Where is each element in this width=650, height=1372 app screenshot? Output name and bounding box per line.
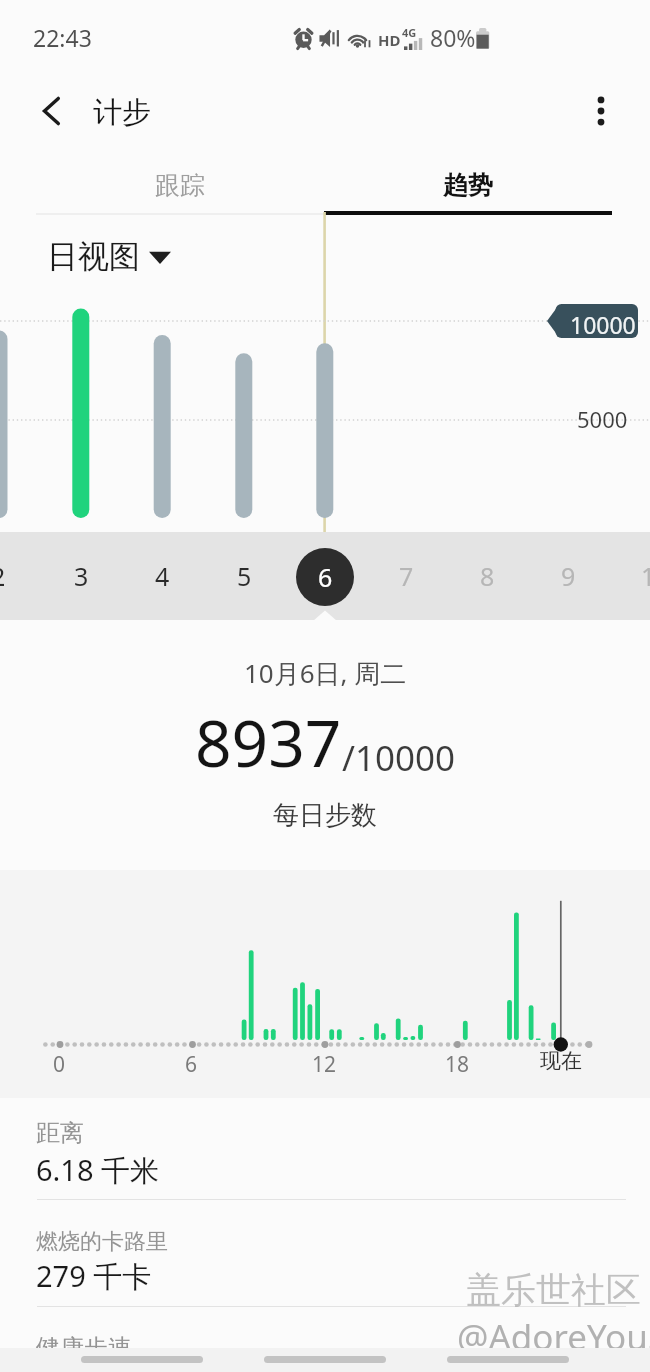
button[interactable]: 9 — [546, 532, 590, 620]
button[interactable]: 2 — [0, 532, 20, 620]
button[interactable]: Navigation button — [81, 1356, 203, 1363]
button[interactable]: 3 — [59, 532, 103, 620]
button[interactable]: 4 — [140, 532, 184, 620]
staticText: 4G — [402, 25, 417, 40]
staticText: 健康步速 — [36, 1333, 132, 1363]
button[interactable]: Navigation button — [447, 1356, 569, 1363]
button[interactable]: More options — [578, 88, 624, 134]
button[interactable]: 跟踪 — [36, 156, 324, 214]
staticText: 12 — [312, 1050, 337, 1079]
staticText: 6.18 千米 — [36, 1150, 160, 1190]
staticText: 计步 — [93, 94, 151, 131]
button[interactable]: 5 — [222, 532, 266, 620]
staticText: 6 — [318, 560, 333, 594]
staticText: 279 千卡 — [36, 1256, 152, 1296]
staticText: @AdoreYouS — [457, 1313, 650, 1361]
button[interactable]: 趋势 — [324, 156, 612, 214]
staticText: /10000 — [342, 734, 456, 782]
button[interactable]: 燃烧的卡路里 — [0, 1200, 650, 1306]
staticText: 18 — [445, 1050, 470, 1079]
button[interactable]: 8 — [465, 532, 509, 620]
staticText: 10月6日, 周二 — [244, 655, 407, 691]
staticText: 22:43 — [33, 22, 92, 53]
staticText: 趋势 — [443, 170, 493, 201]
staticText: 5000 — [577, 404, 628, 434]
staticText: 8937 — [195, 699, 342, 786]
staticText: 4 — [155, 559, 170, 593]
button[interactable]: 7 — [384, 532, 428, 620]
button[interactable]: 1 — [626, 532, 650, 620]
staticText: 2 — [0, 559, 6, 593]
button[interactable]: 距离 — [0, 1098, 650, 1199]
staticText: 8 — [480, 559, 495, 593]
staticText: 距离 — [36, 1118, 84, 1148]
staticText: 日视图 — [47, 237, 140, 276]
staticText: 燃烧的卡路里 — [36, 1228, 168, 1256]
button[interactable]: 健康步速 — [0, 1307, 650, 1349]
button[interactable]: 6 — [296, 548, 354, 606]
staticText: 10000 — [570, 309, 636, 340]
staticText: 9 — [561, 559, 576, 593]
staticText: 盖乐世社区 — [466, 1268, 641, 1312]
staticText: 3 — [74, 559, 89, 593]
staticText: 每日步数 — [273, 799, 377, 832]
staticText: HD — [378, 30, 401, 50]
staticText: 0 — [53, 1050, 66, 1079]
staticText: 80% — [430, 22, 476, 53]
staticText: 6 — [185, 1050, 198, 1079]
button[interactable]: 日视图 — [44, 236, 176, 276]
staticText: 7 — [399, 559, 414, 593]
button[interactable]: Navigation button — [264, 1356, 386, 1363]
staticText: 5 — [237, 559, 252, 593]
button[interactable]: Back — [31, 90, 73, 132]
staticText: 跟踪 — [155, 170, 205, 201]
staticText: 现在 — [540, 1048, 582, 1074]
staticText: 1 — [641, 559, 650, 593]
